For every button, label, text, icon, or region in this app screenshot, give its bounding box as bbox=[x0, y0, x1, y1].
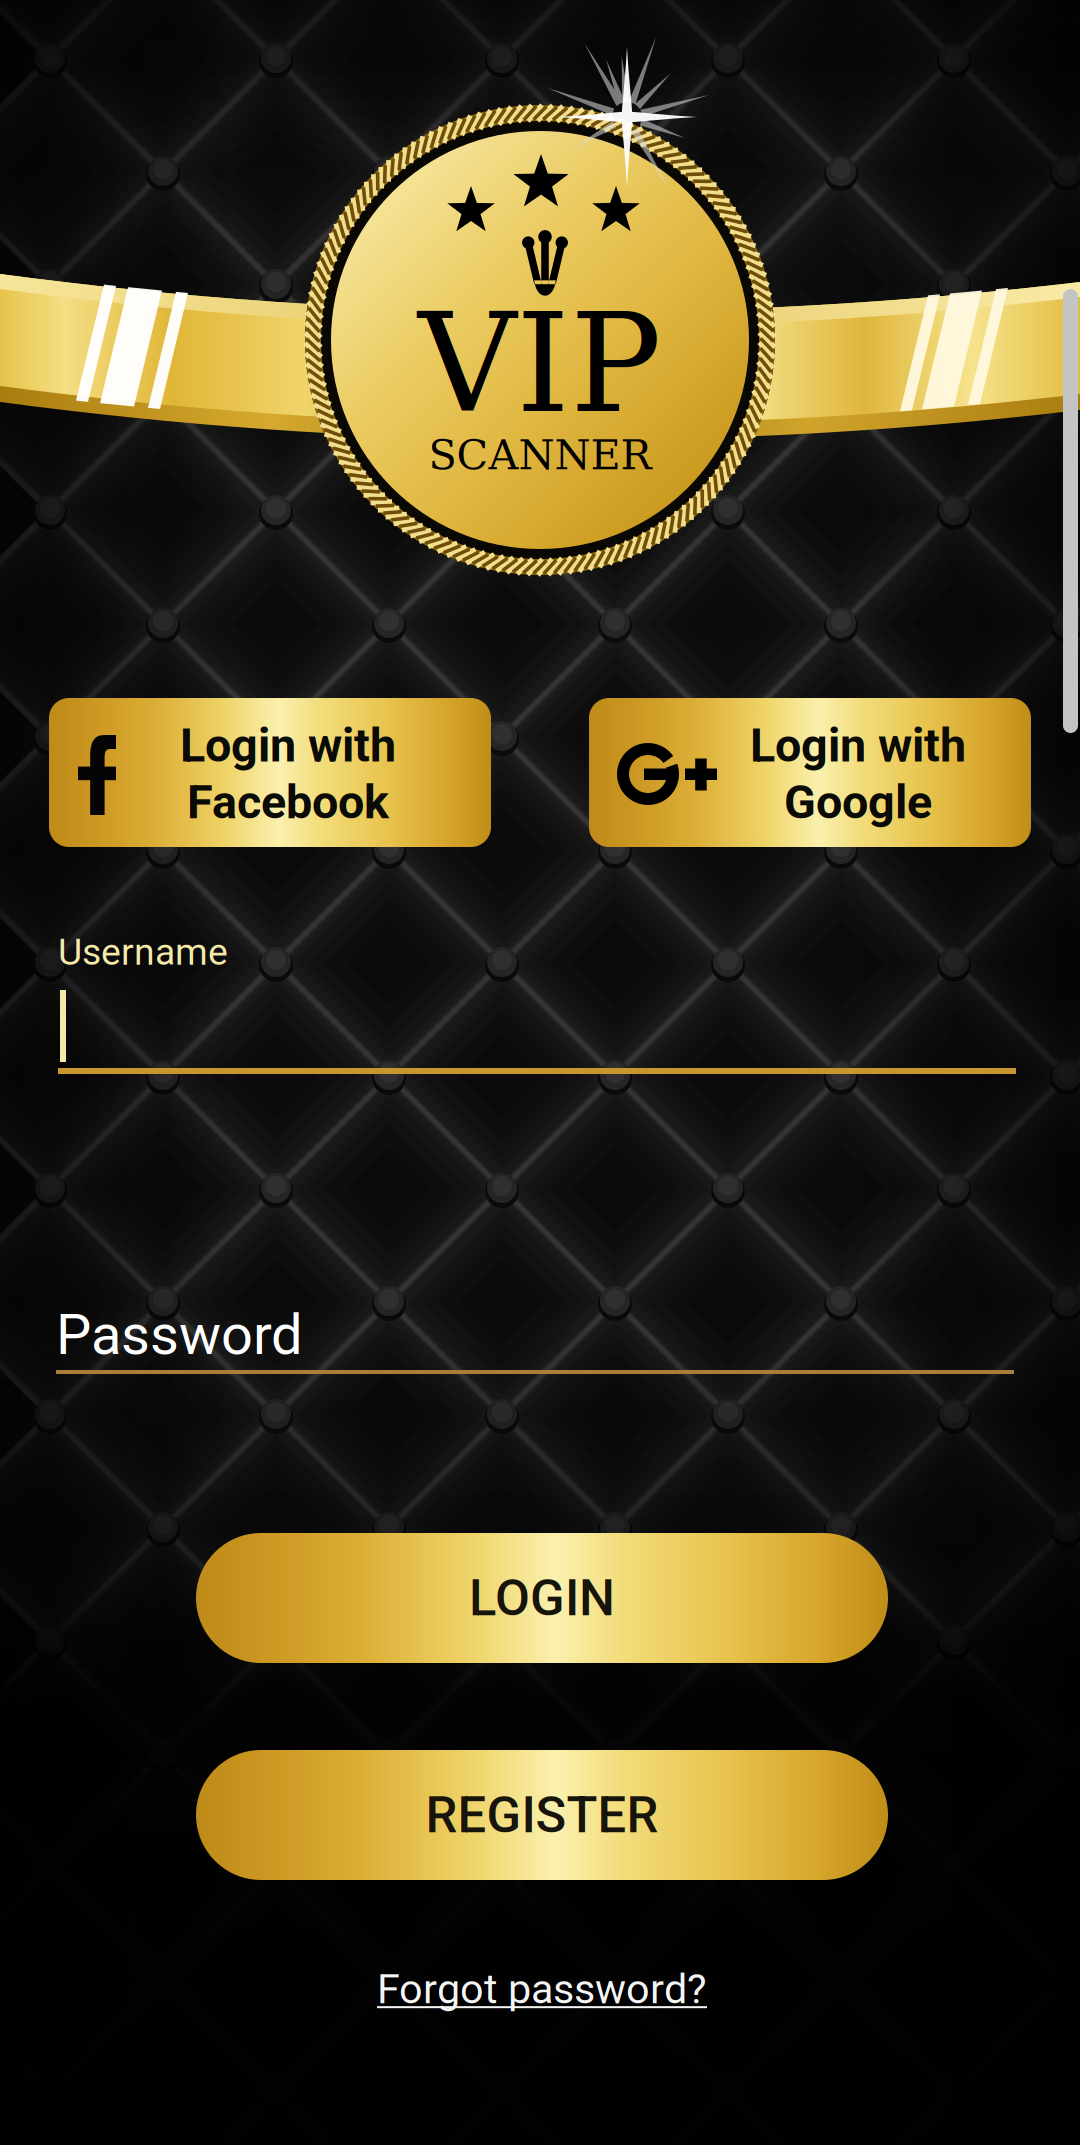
staticText: Username bbox=[58, 930, 228, 974]
staticText: VIP bbox=[418, 285, 662, 443]
button[interactable]: LOGIN bbox=[196, 1533, 888, 1663]
button[interactable]: Login with Google bbox=[589, 698, 1031, 847]
staticText: Google bbox=[784, 775, 932, 830]
button[interactable]: Login with Facebook bbox=[49, 698, 491, 847]
button[interactable]: Forgot password? bbox=[342, 1959, 742, 2019]
staticText: SCANNER bbox=[428, 431, 651, 479]
staticText: Login with bbox=[750, 718, 966, 773]
staticText: Password bbox=[56, 1302, 303, 1368]
staticText: REGISTER bbox=[425, 1785, 658, 1845]
button[interactable]: REGISTER bbox=[196, 1750, 888, 1880]
staticText: Forgot password? bbox=[377, 1965, 707, 2013]
staticText: Login with bbox=[180, 718, 396, 773]
staticText: LOGIN bbox=[469, 1568, 615, 1628]
staticText: Facebook bbox=[187, 775, 389, 830]
